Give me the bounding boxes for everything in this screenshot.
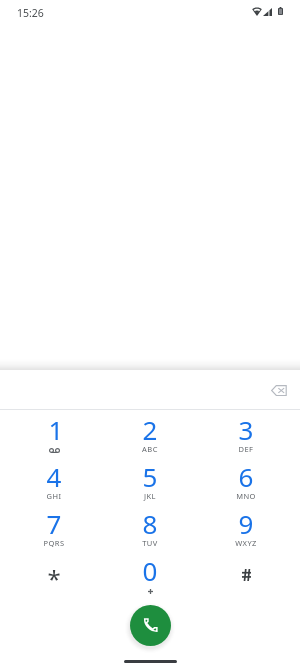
staticText: DEF	[198, 444, 294, 454]
staticText: 7	[6, 506, 102, 541]
button[interactable]: 6	[198, 457, 294, 504]
staticText: 15:26	[17, 6, 44, 20]
staticText: 6	[198, 459, 294, 494]
staticText: TUV	[102, 538, 198, 548]
button[interactable]: 9	[198, 504, 294, 551]
staticText: JKL	[102, 491, 198, 501]
button[interactable]: *	[6, 551, 102, 598]
staticText: 9	[198, 506, 294, 541]
button[interactable]: Backspace	[262, 373, 296, 407]
staticText: 3	[198, 412, 294, 447]
staticText: *	[6, 562, 102, 595]
staticText: GHI	[6, 491, 102, 501]
staticText: 0	[102, 553, 198, 588]
staticText: 5	[102, 459, 198, 494]
staticText: 2	[102, 412, 198, 447]
button[interactable]	[198, 551, 294, 598]
staticText: PQRS	[6, 538, 102, 548]
button[interactable]: 5	[102, 457, 198, 504]
staticText: WXYZ	[198, 538, 294, 548]
button[interactable]: 8	[102, 504, 198, 551]
button[interactable]: 0	[102, 551, 198, 598]
staticText: 8	[102, 506, 198, 541]
staticText: 4	[6, 459, 102, 494]
button[interactable]: 4	[6, 457, 102, 504]
button[interactable]: 7	[6, 504, 102, 551]
staticText: 1	[8, 412, 104, 447]
button[interactable]: Call	[130, 605, 171, 646]
staticText: MNO	[198, 491, 294, 501]
button[interactable]: 2	[102, 410, 198, 457]
staticText: ABC	[102, 444, 198, 454]
button[interactable]: 3	[198, 410, 294, 457]
button[interactable]: 1	[6, 410, 102, 457]
